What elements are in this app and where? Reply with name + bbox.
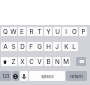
button[interactable]: N xyxy=(53,57,61,66)
staticText: R xyxy=(29,28,34,36)
button[interactable]: Shift xyxy=(1,57,9,66)
staticText: Q xyxy=(3,28,8,36)
staticText: U xyxy=(55,28,60,36)
button[interactable]: X xyxy=(18,57,26,66)
button[interactable]: E xyxy=(18,27,26,36)
staticText: F xyxy=(29,43,33,51)
button[interactable]: Q xyxy=(1,27,9,36)
button[interactable]: K xyxy=(62,42,70,51)
staticText: G xyxy=(37,43,42,51)
button[interactable]: S xyxy=(9,42,17,51)
staticText: P xyxy=(81,28,86,36)
button[interactable]: R xyxy=(27,27,35,36)
button[interactable]: O xyxy=(70,27,78,36)
button[interactable]: 123 xyxy=(0,71,11,81)
staticText: A xyxy=(3,43,8,51)
staticText: M xyxy=(63,58,69,66)
button[interactable]: Dictation xyxy=(20,71,28,81)
staticText: X xyxy=(20,58,25,66)
staticText: I xyxy=(65,28,67,36)
staticText: Y xyxy=(46,28,51,36)
staticText: O xyxy=(72,28,77,36)
button[interactable]: D xyxy=(18,42,26,51)
staticText: V xyxy=(37,58,42,66)
button[interactable]: space xyxy=(29,71,65,81)
staticText: N xyxy=(55,58,60,66)
button[interactable]: Y xyxy=(44,27,52,36)
button[interactable]: L xyxy=(70,42,78,51)
button[interactable]: Next keyboard xyxy=(12,71,19,81)
button[interactable]: V xyxy=(35,57,43,66)
staticText: return xyxy=(70,74,83,79)
staticText: 123 xyxy=(2,74,10,79)
staticText: Z xyxy=(11,58,16,66)
staticText: T xyxy=(37,28,42,36)
button[interactable]: H xyxy=(44,42,52,51)
button[interactable]: G xyxy=(35,42,43,51)
button[interactable]: F xyxy=(27,42,35,51)
button[interactable]: I xyxy=(62,27,70,36)
button[interactable]: U xyxy=(53,27,61,36)
button[interactable]: T xyxy=(35,27,43,36)
staticText: J xyxy=(55,43,59,51)
button[interactable]: W xyxy=(9,27,17,36)
staticText: space xyxy=(41,74,54,79)
staticText: B xyxy=(46,58,51,66)
staticText: E xyxy=(20,28,24,36)
button[interactable]: J xyxy=(53,42,61,51)
button[interactable]: A xyxy=(1,42,9,51)
button[interactable]: Z xyxy=(9,57,17,66)
staticText: S xyxy=(11,43,16,51)
button[interactable]: M xyxy=(62,57,70,66)
button[interactable]: P xyxy=(79,27,87,36)
staticText: W xyxy=(10,28,17,36)
staticText: C xyxy=(29,58,34,66)
button[interactable]: B xyxy=(44,57,52,66)
button[interactable]: return xyxy=(66,71,87,81)
staticText: H xyxy=(46,43,51,51)
staticText: D xyxy=(20,43,25,51)
button[interactable]: C xyxy=(27,57,35,66)
staticText: L xyxy=(72,43,76,51)
button[interactable]: Backspace xyxy=(76,57,86,66)
staticText: K xyxy=(64,43,69,51)
